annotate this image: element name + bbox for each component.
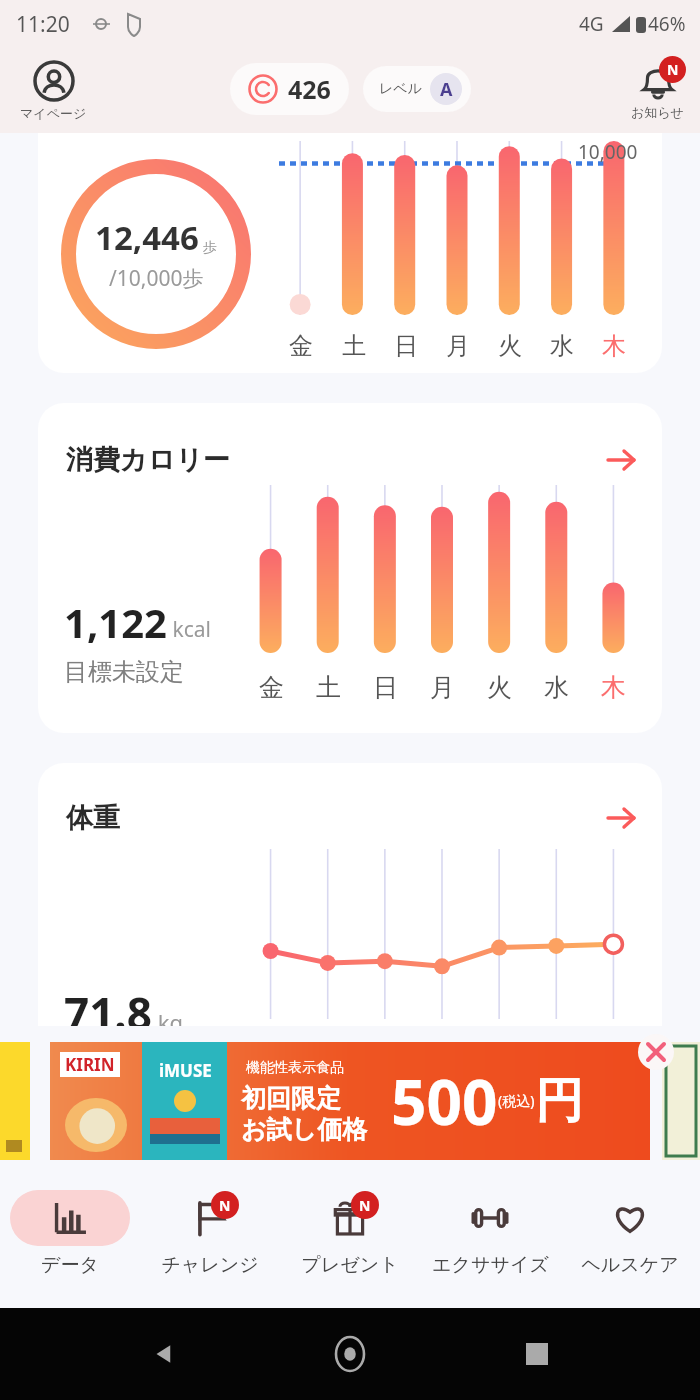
staticText: 目標未設定 [64, 657, 184, 687]
button[interactable]: 12,446 [38, 133, 662, 373]
button[interactable]: ホーム [326, 1330, 374, 1378]
button[interactable]: N [280, 1176, 420, 1308]
staticText: N [667, 60, 679, 79]
staticText: kcal [167, 615, 211, 644]
staticText: 初回限定 [241, 1083, 341, 1114]
staticText: 1,122 [64, 595, 167, 649]
staticText: 日 [394, 331, 418, 361]
button[interactable]: 戻る [139, 1330, 187, 1378]
staticText: 月 [430, 672, 455, 703]
staticText: お知らせ [631, 104, 684, 120]
staticText: 4G [579, 11, 604, 37]
staticText: エクササイズ [432, 1253, 549, 1277]
button[interactable]: 体重 [38, 763, 662, 1063]
staticText: 12,446 [95, 215, 199, 260]
staticText: 消費カロリー [66, 443, 230, 477]
staticText: N [359, 1196, 371, 1215]
staticText: プレゼント [301, 1253, 399, 1277]
staticText: 火 [498, 331, 522, 361]
button[interactable]: 最近のアプリ [513, 1330, 561, 1378]
staticText: 土 [316, 672, 341, 703]
staticText: 71.8 [64, 983, 152, 1043]
button[interactable]: ヘルスケア [560, 1176, 700, 1308]
staticText: 水 [544, 672, 569, 703]
button[interactable]: エクササイズ [420, 1176, 560, 1308]
staticText: 木 [602, 331, 626, 361]
staticText: 日 [373, 672, 398, 703]
staticText: 10,000 [578, 139, 638, 165]
staticText: A [440, 77, 453, 102]
button[interactable]: 426 [230, 63, 349, 115]
staticText: 金 [289, 331, 313, 361]
staticText: KIRIN [65, 1053, 115, 1076]
staticText: 体重 [66, 801, 120, 835]
staticText: 歩 [199, 237, 217, 256]
staticText: レベル [379, 80, 422, 98]
staticText: N [219, 1196, 231, 1215]
button[interactable]: データ [0, 1176, 140, 1308]
staticText: 水 [550, 331, 574, 361]
staticText: 500 [391, 1059, 498, 1143]
staticText: kg [152, 1007, 183, 1037]
staticText: 46% [648, 11, 686, 37]
staticText: /10,000歩 [109, 264, 204, 293]
staticText: (税込) [498, 1091, 535, 1110]
staticText: 機能性表示食品 [246, 1059, 344, 1077]
staticText: 円 [535, 1071, 583, 1131]
staticText: ヘルスケア [581, 1253, 679, 1277]
staticText: お試し価格 [241, 1114, 368, 1145]
button[interactable]: お知らせ [631, 61, 684, 120]
button[interactable]: レベル [363, 66, 471, 112]
staticText: 土 [342, 331, 366, 361]
staticText: マイページ [20, 105, 87, 121]
button[interactable]: 消費カロリー [38, 403, 662, 733]
staticText: 火 [487, 672, 512, 703]
staticText: 426 [288, 72, 331, 106]
staticText: 金 [259, 672, 284, 703]
button[interactable]: KIRIN [50, 1042, 650, 1160]
button[interactable]: 体重詳細 [606, 803, 636, 833]
button[interactable]: マイページ [20, 60, 87, 121]
staticText: 木 [601, 672, 626, 703]
staticText: iMUSE [159, 1059, 212, 1082]
staticText: チャレンジ [161, 1253, 259, 1277]
staticText: データ [41, 1253, 99, 1277]
button[interactable]: 消費カロリー詳細 [606, 445, 636, 475]
button[interactable]: N [140, 1176, 280, 1308]
staticText: 11:20 [16, 10, 70, 39]
staticText: 月 [446, 331, 470, 361]
button[interactable]: 広告を閉じる [638, 1034, 674, 1070]
